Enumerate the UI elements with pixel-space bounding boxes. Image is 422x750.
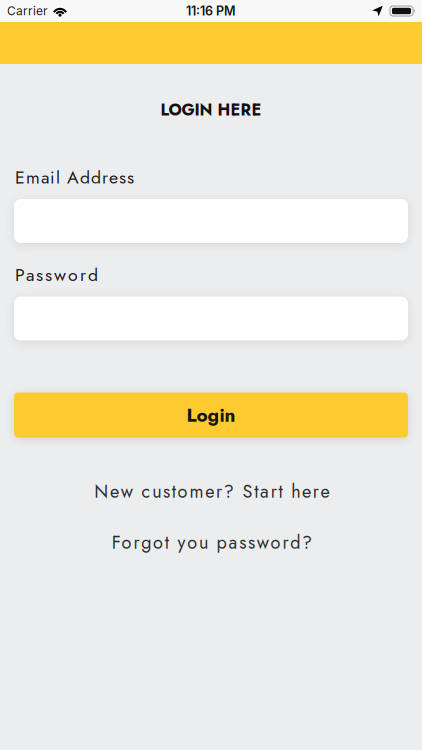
staticText: Email Address [15, 164, 134, 190]
button[interactable]: New customer? Start here [1, 479, 421, 505]
button[interactable]: Login [14, 393, 408, 438]
staticText: Forgot you password? [111, 530, 311, 556]
staticText: Login [186, 401, 235, 429]
staticText: Carrier [7, 4, 48, 18]
button[interactable]: Forgot you password? [1, 530, 421, 556]
staticText: 11:16 PM [186, 3, 236, 19]
staticText: New customer? Start here [93, 479, 329, 505]
staticText: LOGIN HERE [160, 98, 261, 121]
staticText: Password [15, 262, 98, 287]
